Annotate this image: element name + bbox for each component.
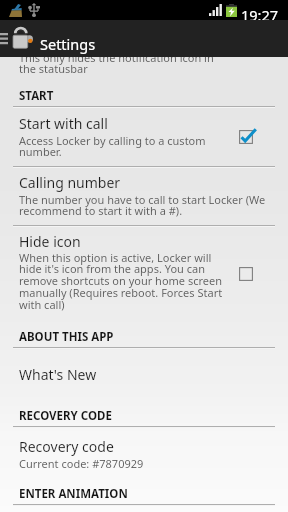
button[interactable] [0,167,288,226]
staticText: START [19,88,54,104]
staticText: Start with call [19,114,108,133]
staticText: Hide icon [19,232,81,251]
button[interactable] [0,107,288,167]
button[interactable] [0,107,288,167]
staticText: This only hides the notification icon in… [19,50,214,77]
staticText: What's New [19,365,97,384]
staticText: 19:27 [241,5,279,25]
button[interactable]: Unchecked [231,259,261,289]
staticText: Recovery code [19,437,114,456]
staticText: ENTER ANIMATION [19,486,128,502]
staticText: The number you have to call to start Loc… [19,192,266,219]
button[interactable] [0,427,288,487]
button[interactable]: Checked [231,122,261,152]
staticText: Current code: #7870929 [19,456,144,471]
button[interactable]: Settings, navigate up [0,20,288,57]
button[interactable] [0,348,288,408]
staticText: Settings [40,34,96,54]
staticText: Access Locker by calling to a custom num… [19,133,206,160]
staticText: RECOVERY CODE [19,408,112,424]
staticText: Calling number [19,173,121,192]
staticText: ABOUT THIS APP [19,329,114,345]
staticText: When this option is active, Locker will … [19,250,223,313]
button[interactable] [0,226,288,323]
